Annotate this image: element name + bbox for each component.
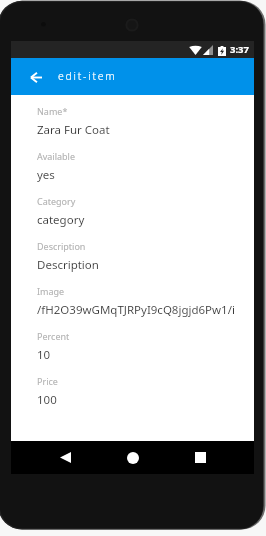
staticText: 100 [37, 392, 57, 408]
staticText: 10 [37, 347, 51, 363]
staticText: Zara Fur Coat [37, 122, 110, 138]
button[interactable]: Back [24, 65, 48, 89]
staticText: category [37, 212, 85, 228]
button[interactable]: Home [116, 441, 150, 474]
staticText: 3:37 [230, 43, 249, 56]
button[interactable]: Back [48, 441, 82, 474]
button[interactable]: Recent apps [183, 441, 217, 474]
staticText: yes [37, 167, 55, 183]
staticText: Image [37, 285, 65, 297]
staticText: Category [37, 195, 76, 207]
staticText: Description [37, 257, 99, 273]
staticText: Available [37, 150, 75, 162]
staticText: Description [37, 240, 86, 252]
staticText: /fH2O39wGMqTJRPyI9cQ8jgjd6Pw1/i [37, 302, 235, 318]
staticText: Name* [37, 105, 68, 117]
staticText: Price [37, 375, 58, 387]
staticText: edit-item [58, 69, 117, 83]
staticText: Percent [37, 330, 70, 342]
